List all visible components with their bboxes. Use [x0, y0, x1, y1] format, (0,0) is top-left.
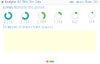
button[interactable]: 2,084 [33, 12, 50, 24]
staticText: All Web Site Data [17, 0, 40, 4]
button[interactable]: Breakdown of channels and sessions [2, 25, 52, 29]
staticText: Analytics [5, 0, 16, 4]
button[interactable]: 842 [67, 12, 83, 24]
staticText: Export [76, 0, 84, 4]
button[interactable]: Edit [93, 0, 98, 4]
staticText: 842 [72, 20, 78, 24]
staticText: Share [85, 0, 92, 4]
staticText: 2,084 [37, 20, 46, 24]
button[interactable]: Save [69, 0, 74, 4]
staticText: 318 [89, 20, 95, 24]
staticText: 1,166 [54, 20, 63, 24]
button[interactable]: Analytics [5, 0, 16, 4]
button[interactable]: Export [76, 0, 84, 4]
button[interactable]: Share [85, 0, 92, 4]
staticText: Save [69, 0, 74, 4]
button[interactable]: 3,102 [17, 12, 33, 24]
button[interactable]: Summary metrics for the period [2, 6, 44, 9]
button[interactable]: 1,166 [50, 12, 67, 24]
staticText: 4,215 [4, 20, 13, 24]
staticText: Summary metrics for the period [2, 6, 44, 9]
staticText: Breakdown of channels and sessions [2, 25, 52, 29]
staticText: 3,102 [20, 20, 29, 24]
button[interactable]: Product logo [46, 61, 54, 62]
staticText: Edit [93, 0, 98, 4]
button[interactable]: All Web Site Data [17, 0, 40, 4]
button[interactable]: 4,215 [0, 12, 17, 24]
button[interactable]: 318 [83, 12, 100, 24]
